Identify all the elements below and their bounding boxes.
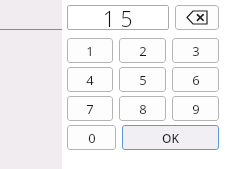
button[interactable]: OK: [122, 125, 219, 150]
staticText: 9: [192, 100, 200, 118]
staticText: 2: [139, 42, 147, 60]
staticText: 6: [192, 71, 200, 89]
button[interactable]: 1 5: [67, 5, 169, 30]
button[interactable]: 6: [172, 67, 219, 92]
staticText: 1: [86, 42, 94, 60]
staticText: 3: [192, 42, 200, 60]
staticText: 0: [88, 129, 96, 147]
button[interactable]: 8: [119, 96, 166, 121]
button[interactable]: 3: [172, 38, 219, 63]
staticText: OK: [162, 130, 179, 146]
button[interactable]: 2: [119, 38, 166, 63]
staticText: 4: [86, 71, 94, 89]
staticText: 5: [139, 71, 147, 89]
button[interactable]: 0: [67, 125, 116, 150]
button[interactable]: 9: [172, 96, 219, 121]
button[interactable]: Backspace: [175, 5, 219, 30]
staticText: 7: [86, 100, 94, 118]
staticText: 1 5: [103, 5, 133, 30]
button[interactable]: 1: [67, 38, 113, 63]
button[interactable]: 7: [67, 96, 113, 121]
staticText: 8: [139, 100, 147, 118]
button[interactable]: 4: [67, 67, 113, 92]
button[interactable]: 5: [119, 67, 166, 92]
